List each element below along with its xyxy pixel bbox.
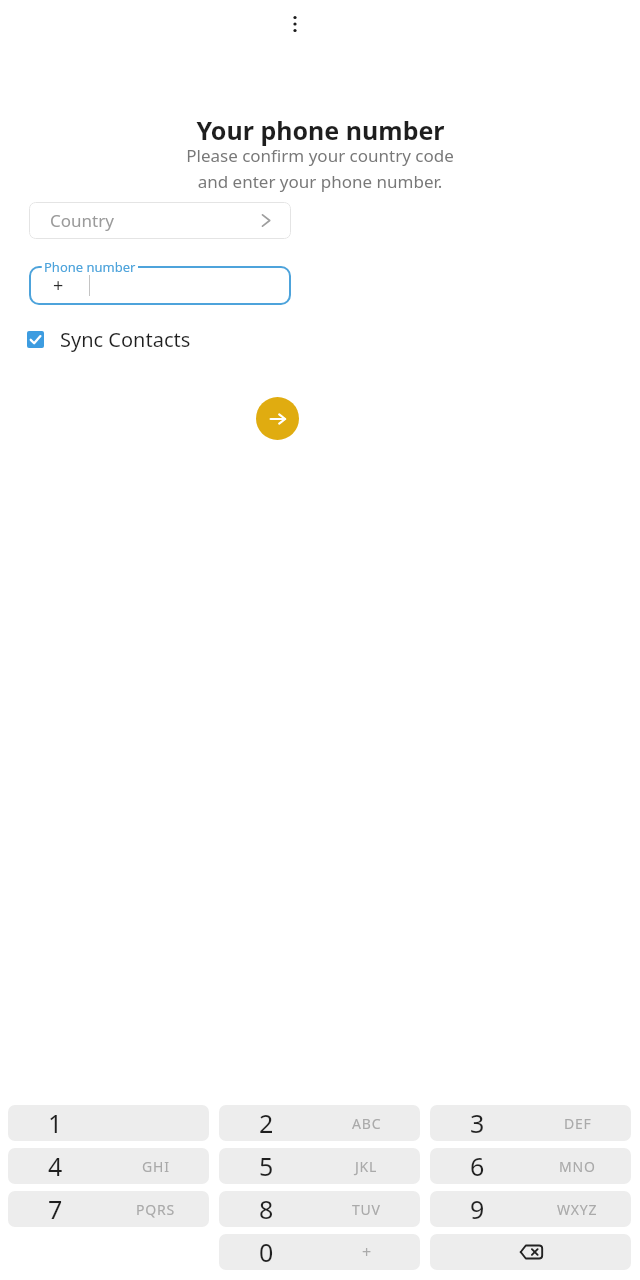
button[interactable]: 7 — [8, 1191, 209, 1227]
staticText: GHI — [142, 1157, 170, 1176]
staticText: TUV — [352, 1200, 381, 1219]
button[interactable]: 8 — [219, 1191, 420, 1227]
staticText: WXYZ — [557, 1200, 598, 1219]
staticText: 4 — [48, 1149, 63, 1183]
staticText: Please confirm your country code and ent… — [186, 144, 454, 193]
staticText: 1 — [48, 1106, 63, 1140]
staticText: + — [362, 1241, 372, 1263]
button[interactable]: Sync Contacts — [21, 320, 197, 359]
staticText: 5 — [259, 1149, 274, 1183]
button[interactable]: 4 — [8, 1148, 209, 1184]
button[interactable]: 0 — [219, 1234, 420, 1270]
staticText: + — [53, 273, 64, 298]
button[interactable]: Backspace — [430, 1234, 631, 1270]
staticText: Your phone number — [196, 113, 445, 147]
button[interactable]: 2 — [219, 1105, 420, 1141]
staticText: 0 — [259, 1235, 274, 1269]
button[interactable]: 6 — [430, 1148, 631, 1184]
staticText: JKL — [355, 1157, 378, 1176]
button[interactable]: 3 — [430, 1105, 631, 1141]
staticText: ABC — [352, 1114, 382, 1133]
staticText: 2 — [259, 1106, 274, 1140]
staticText: 8 — [259, 1192, 274, 1226]
button[interactable]: Phone number — [29, 266, 291, 305]
button[interactable]: Next — [256, 397, 299, 440]
staticText: 3 — [470, 1106, 485, 1140]
staticText: MNO — [559, 1157, 596, 1176]
staticText: 6 — [470, 1149, 485, 1183]
button[interactable]: 1 — [8, 1105, 209, 1141]
staticText: 9 — [470, 1192, 485, 1226]
button[interactable]: Country — [29, 202, 291, 239]
staticText: 7 — [48, 1192, 63, 1226]
staticText: Phone number — [44, 258, 136, 276]
button[interactable]: More options — [271, 0, 319, 48]
staticText: PQRS — [136, 1200, 175, 1219]
button[interactable]: 9 — [430, 1191, 631, 1227]
staticText: DEF — [564, 1114, 592, 1133]
staticText: Sync Contacts — [60, 326, 191, 353]
button[interactable]: 5 — [219, 1148, 420, 1184]
staticText: Country — [50, 209, 114, 232]
